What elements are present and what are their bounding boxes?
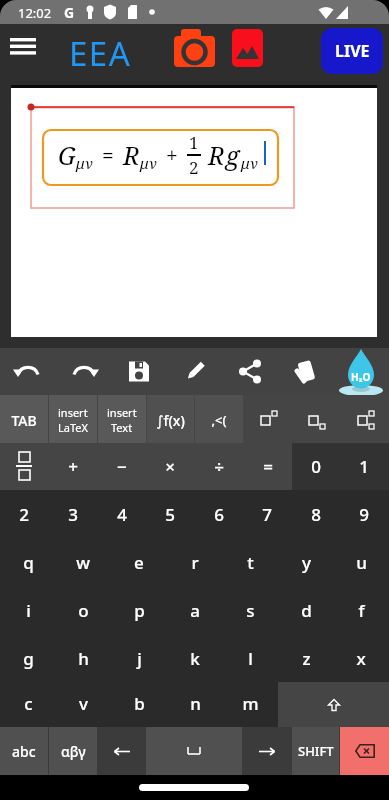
button[interactable]: 8	[292, 492, 340, 536]
button[interactable]: f	[337, 588, 385, 632]
button[interactable]: g	[4, 636, 52, 680]
staticText: μν	[76, 153, 93, 173]
button[interactable]: q	[4, 540, 52, 584]
button[interactable]: −	[98, 444, 146, 488]
button[interactable]: 1	[340, 444, 388, 488]
button[interactable]	[174, 29, 216, 73]
staticText: 3	[68, 503, 78, 526]
button[interactable]: v	[59, 681, 107, 725]
button[interactable]: w	[59, 540, 107, 584]
button[interactable]: abc	[0, 727, 48, 775]
button[interactable]: H₂O	[333, 348, 389, 395]
button[interactable]	[222, 348, 278, 395]
button[interactable]	[341, 398, 389, 442]
button[interactable]: =	[244, 444, 292, 488]
staticText: q	[23, 551, 34, 574]
button[interactable]: a	[171, 588, 219, 632]
button[interactable]	[167, 348, 223, 395]
button[interactable]: ×	[146, 444, 194, 488]
button[interactable]: 3	[49, 492, 97, 536]
button[interactable]: 9	[340, 492, 388, 536]
button[interactable]: 7	[243, 492, 291, 536]
button[interactable]: j	[115, 636, 163, 680]
staticText: z	[302, 647, 311, 670]
button[interactable]	[0, 444, 48, 488]
button[interactable]: LIVE	[321, 28, 383, 74]
button[interactable]	[6, 32, 42, 62]
button[interactable]	[97, 727, 146, 775]
button[interactable]: SHIFT	[292, 727, 339, 775]
button[interactable]: p	[115, 588, 163, 632]
staticText: w	[76, 551, 90, 574]
button[interactable]: z	[282, 636, 330, 680]
button[interactable]	[292, 398, 340, 442]
button[interactable]	[49, 395, 97, 443]
staticText: y	[302, 551, 311, 574]
button[interactable]: αβγ	[49, 727, 97, 775]
button[interactable]: y	[282, 540, 330, 584]
staticText: 1	[189, 131, 199, 154]
button[interactable]: 6	[195, 492, 243, 536]
button[interactable]: c	[4, 681, 52, 725]
staticText: t	[247, 551, 254, 574]
button[interactable]: TAB	[0, 398, 48, 442]
button[interactable]	[98, 395, 146, 443]
staticText: f	[358, 599, 365, 622]
button[interactable]	[0, 348, 56, 395]
button[interactable]	[243, 727, 291, 775]
button[interactable]: n	[171, 681, 219, 725]
button[interactable]	[244, 398, 292, 442]
button[interactable]: h	[59, 636, 107, 680]
button[interactable]	[278, 348, 334, 395]
staticText: ÷	[214, 455, 224, 478]
button[interactable]: insert	[49, 398, 97, 442]
button[interactable]	[147, 395, 194, 443]
button[interactable]	[0, 395, 48, 443]
button[interactable]: o	[59, 588, 107, 632]
button[interactable]: d	[282, 588, 330, 632]
staticText: d	[301, 599, 312, 622]
button[interactable]: x	[337, 636, 385, 680]
button[interactable]: insert	[98, 398, 146, 442]
button[interactable]: k	[171, 636, 219, 680]
button[interactable]	[278, 682, 389, 727]
button[interactable]: +	[49, 444, 97, 488]
staticText: v	[79, 692, 88, 715]
button[interactable]: u	[337, 540, 385, 584]
button[interactable]: ,<(	[195, 398, 243, 442]
staticText: 12:02	[18, 4, 52, 22]
button[interactable]: 2	[0, 492, 48, 536]
staticText: Text	[111, 420, 133, 435]
button[interactable]: EEA	[69, 31, 132, 76]
button[interactable]: b	[115, 681, 163, 725]
button[interactable]: r	[171, 540, 219, 584]
button[interactable]: 4	[98, 492, 146, 536]
button[interactable]: t	[226, 540, 274, 584]
button[interactable]: e	[115, 540, 163, 584]
staticText: l	[248, 647, 253, 670]
button[interactable]	[146, 727, 242, 775]
button[interactable]: 5	[146, 492, 194, 536]
button[interactable]: l	[226, 636, 274, 680]
button[interactable]	[232, 29, 263, 73]
button[interactable]: ∫f(x)	[146, 398, 194, 442]
button[interactable]: m	[226, 681, 274, 725]
button[interactable]: i	[4, 588, 52, 632]
staticText: g	[23, 647, 34, 670]
button[interactable]: 0	[292, 444, 340, 488]
staticText: LaTeX	[58, 420, 88, 435]
staticText: abc	[12, 742, 36, 761]
staticText: SHIFT	[298, 742, 334, 760]
staticText: x	[356, 647, 366, 670]
staticText: =	[263, 455, 273, 478]
button[interactable]: s	[226, 588, 274, 632]
staticText: H₂O	[351, 370, 371, 384]
staticText: e	[134, 551, 144, 574]
button[interactable]	[340, 727, 389, 775]
staticText: R	[123, 138, 140, 172]
button[interactable]	[56, 348, 112, 395]
staticText: +	[166, 141, 178, 170]
button[interactable]: ÷	[195, 444, 243, 488]
button[interactable]	[195, 395, 243, 443]
button[interactable]	[111, 348, 167, 395]
